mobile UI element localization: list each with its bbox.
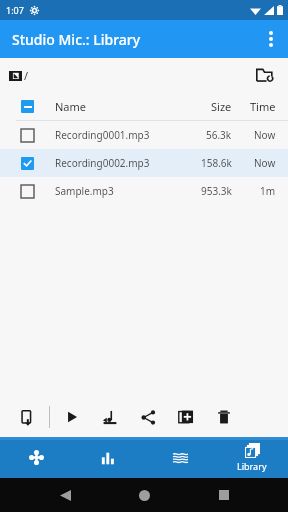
button[interactable]: Share <box>134 403 162 431</box>
staticText: Recording0002.mp3 <box>55 156 150 170</box>
button[interactable]: Recording0002.mp3 <box>0 149 288 177</box>
button[interactable]: More options <box>254 20 288 58</box>
button[interactable]: Import <box>96 403 124 431</box>
button[interactable]: Save to device <box>13 403 41 431</box>
button[interactable]: Select all <box>16 95 38 117</box>
staticText: 1:07 <box>6 4 24 16</box>
staticText: 56.3k <box>206 128 232 142</box>
button[interactable]: Recents <box>209 480 239 510</box>
button[interactable]: Recording0001.mp3 <box>0 121 288 149</box>
button[interactable]: Move <box>0 437 72 478</box>
button[interactable]: Library <box>216 437 288 478</box>
staticText: / <box>24 68 29 83</box>
staticText: 158.6k <box>201 156 232 170</box>
button[interactable]: Add <box>172 403 200 431</box>
staticText: 1m <box>260 184 276 198</box>
button[interactable]: Back <box>50 480 80 510</box>
button[interactable]: Home <box>129 480 159 510</box>
button[interactable]: Delete <box>210 403 238 431</box>
staticText: Studio Mic.: Library <box>12 30 141 49</box>
staticText: Recording0001.mp3 <box>55 128 150 142</box>
button[interactable]: Waves <box>144 437 216 478</box>
button[interactable]: Refresh folder <box>250 61 278 89</box>
staticText: Name <box>55 99 87 114</box>
staticText: Now <box>254 156 276 170</box>
staticText: Now <box>254 128 276 142</box>
staticText: Sample.mp3 <box>55 184 114 198</box>
staticText: Library <box>237 460 267 472</box>
staticText: Time <box>250 99 276 114</box>
button[interactable]: Sample.mp3 <box>0 177 288 205</box>
button[interactable]: / <box>9 68 29 83</box>
button[interactable]: Levels <box>72 437 144 478</box>
staticText: Size <box>211 99 232 114</box>
button[interactable]: Play <box>58 403 86 431</box>
staticText: 953.3k <box>201 184 232 198</box>
